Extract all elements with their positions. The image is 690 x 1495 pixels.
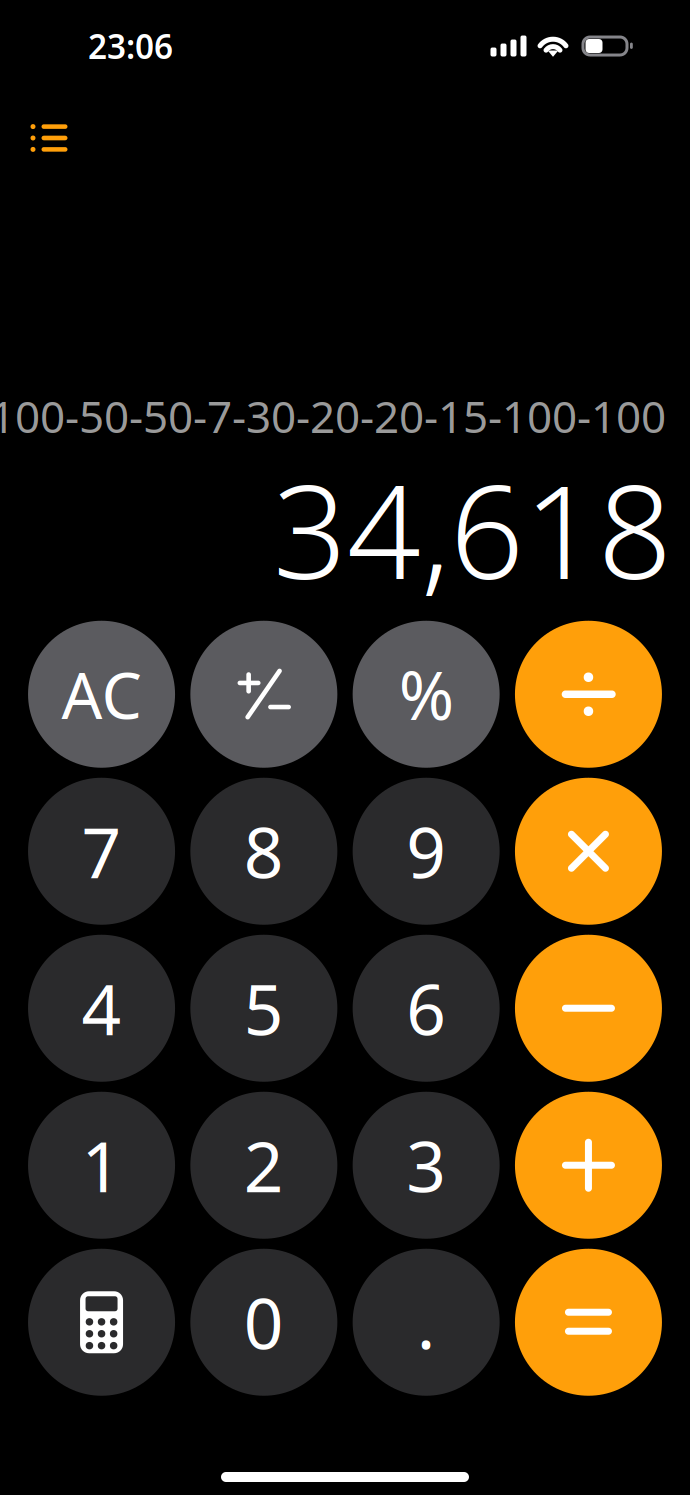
staticText: 4 bbox=[82, 962, 122, 1054]
staticText: AC bbox=[62, 652, 142, 737]
button[interactable]: 3 bbox=[353, 1092, 500, 1239]
button[interactable]: History bbox=[0, 112, 80, 164]
button[interactable]: Equals bbox=[515, 1249, 662, 1396]
button[interactable]: Subtract bbox=[515, 935, 662, 1082]
staticText: 9 bbox=[406, 805, 446, 897]
staticText: . bbox=[417, 1276, 436, 1368]
staticText: % bbox=[399, 650, 454, 738]
staticText: 34,618 bbox=[273, 443, 672, 615]
staticText: 2 bbox=[244, 1119, 284, 1211]
button[interactable]: 0 bbox=[190, 1249, 337, 1396]
button[interactable]: AC bbox=[28, 621, 175, 768]
button[interactable]: Plus Minus bbox=[190, 621, 337, 768]
button[interactable]: . bbox=[353, 1249, 500, 1396]
button[interactable]: 9 bbox=[353, 778, 500, 925]
button[interactable]: 8 bbox=[190, 778, 337, 925]
staticText: 0 bbox=[244, 1276, 284, 1368]
button[interactable]: 2 bbox=[190, 1092, 337, 1239]
staticText: 7 bbox=[82, 805, 122, 897]
staticText: 6 bbox=[406, 962, 446, 1054]
staticText: 100-50-50-7-30-20-20-15-100-100 bbox=[0, 387, 666, 445]
staticText: 3 bbox=[406, 1119, 446, 1211]
button[interactable]: Divide bbox=[515, 621, 662, 768]
button[interactable]: 5 bbox=[190, 935, 337, 1082]
staticText: 1 bbox=[82, 1119, 122, 1211]
button[interactable]: % bbox=[353, 621, 500, 768]
button[interactable]: Multiply bbox=[515, 778, 662, 925]
button[interactable]: 6 bbox=[353, 935, 500, 1082]
button[interactable]: 4 bbox=[28, 935, 175, 1082]
button[interactable]: Calculator bbox=[28, 1249, 175, 1396]
staticText: 23:06 bbox=[88, 24, 173, 68]
staticText: 8 bbox=[244, 805, 284, 897]
button[interactable]: 1 bbox=[28, 1092, 175, 1239]
button[interactable]: 7 bbox=[28, 778, 175, 925]
button[interactable]: Add bbox=[515, 1092, 662, 1239]
staticText: 5 bbox=[244, 962, 284, 1054]
